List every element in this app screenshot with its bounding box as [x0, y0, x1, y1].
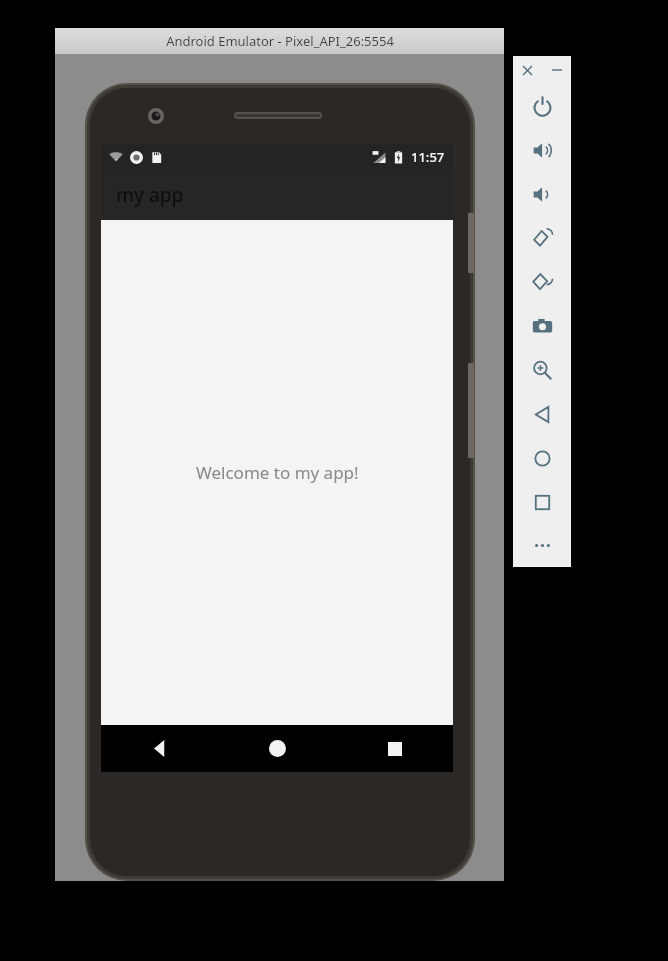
staticText: 11:57 — [411, 148, 445, 166]
button[interactable]: Back — [101, 725, 219, 772]
button[interactable]: Home — [219, 725, 336, 772]
button[interactable]: Volume down — [513, 172, 571, 216]
button[interactable]: More — [513, 524, 571, 567]
button[interactable]: Recent apps — [336, 725, 453, 772]
button[interactable]: Volume up — [513, 128, 571, 172]
button[interactable]: Zoom — [513, 348, 571, 392]
button[interactable]: Close — [513, 56, 542, 84]
button[interactable]: Take screenshot — [513, 304, 571, 348]
button[interactable]: Minimize — [542, 56, 571, 84]
button[interactable]: Home — [513, 436, 571, 480]
button[interactable]: Power — [513, 84, 571, 128]
staticText: my app — [116, 182, 184, 208]
button[interactable]: Rotate right — [513, 260, 571, 304]
button[interactable]: Overview — [513, 480, 571, 524]
staticText: Android Emulator - Pixel_API_26:5554 — [166, 32, 394, 50]
staticText: Welcome to my app! — [196, 461, 359, 484]
button[interactable]: Rotate left — [513, 216, 571, 260]
button[interactable]: Back — [513, 392, 571, 436]
